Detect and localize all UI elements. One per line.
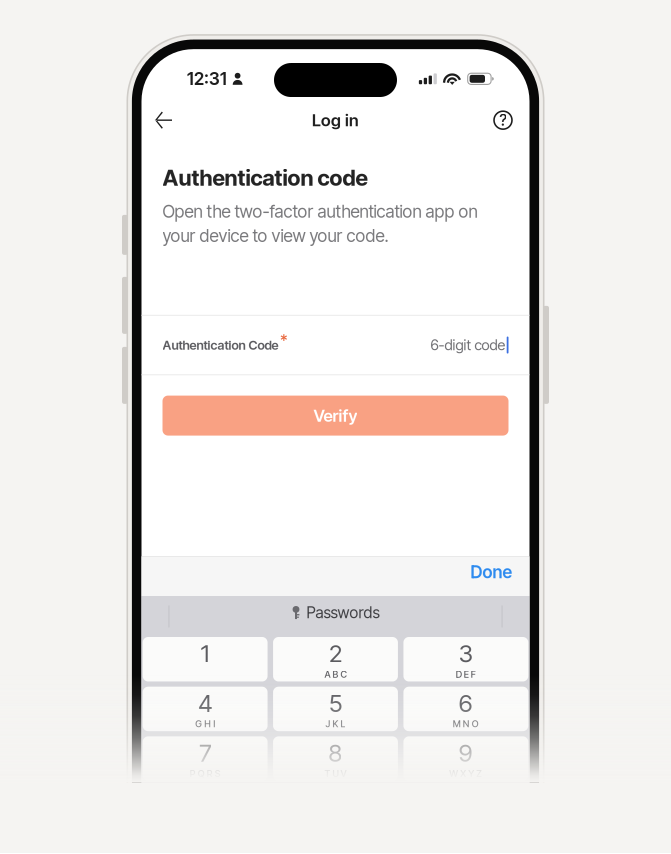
staticText: 5 (329, 689, 342, 718)
staticText: Authentication Code (162, 337, 278, 353)
button[interactable]: 5 (273, 687, 398, 731)
button[interactable]: Verify (162, 396, 508, 436)
staticText: D E F (456, 669, 476, 680)
staticText: A B C (324, 669, 346, 680)
button[interactable]: Done (453, 557, 529, 596)
staticText: J K L (325, 718, 345, 730)
staticText: Log in (312, 110, 359, 130)
staticText: 7 (199, 738, 211, 767)
staticText: Done (470, 561, 512, 582)
staticText: T U V (324, 768, 346, 779)
button[interactable]: 1 (143, 637, 268, 681)
button[interactable]: Passwords (277, 602, 393, 631)
staticText: ? (499, 111, 506, 129)
staticText: P Q R S (190, 768, 221, 779)
staticText: Passwords (306, 603, 379, 622)
button[interactable]: 8 (273, 736, 398, 781)
staticText: 1 (201, 639, 210, 668)
staticText: your device to view your code. (162, 225, 388, 246)
staticText: 8 (328, 738, 342, 767)
staticText: 6 (459, 689, 473, 718)
button[interactable]: Back (141, 108, 184, 132)
staticText: Open the two-factor authentication app o… (162, 201, 477, 222)
staticText: * (280, 331, 288, 350)
staticText: 2 (329, 639, 342, 668)
button[interactable]: Help (481, 108, 529, 132)
staticText: 12:31 (187, 68, 227, 89)
button[interactable]: 4 (143, 687, 268, 731)
button[interactable]: 3 (403, 637, 528, 681)
button[interactable]: 2 (273, 637, 398, 681)
button[interactable]: 9 (403, 736, 528, 781)
staticText: 3 (459, 639, 473, 668)
button[interactable]: 6 (403, 687, 528, 731)
staticText: M N O (453, 718, 479, 730)
staticText: W X Y Z (449, 768, 482, 779)
staticText: 9 (459, 738, 473, 767)
staticText: Verify (313, 405, 357, 426)
staticText: G H I (195, 718, 215, 730)
staticText: Authentication code (162, 164, 367, 191)
staticText: 6-digit code (430, 336, 505, 354)
staticText: 4 (198, 689, 212, 718)
button[interactable]: 7 (143, 736, 268, 781)
